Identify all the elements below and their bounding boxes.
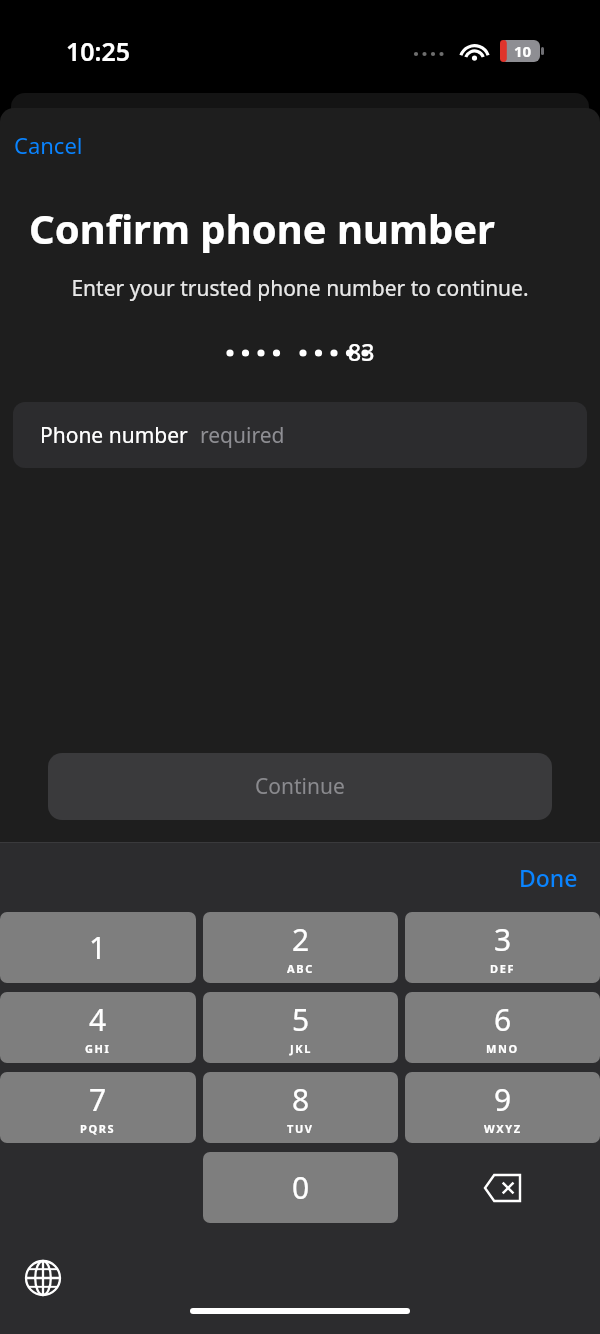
button[interactable]: 1 bbox=[0, 912, 196, 983]
staticText: 3 bbox=[494, 919, 512, 960]
button[interactable]: 0 bbox=[203, 1152, 398, 1223]
button[interactable]: 3 bbox=[405, 912, 600, 983]
staticText: Continue bbox=[255, 772, 345, 801]
staticText: 0 bbox=[292, 1167, 310, 1208]
staticText: Phone number bbox=[40, 421, 188, 450]
staticText: 8 bbox=[292, 1079, 310, 1120]
button[interactable]: 4 bbox=[0, 992, 196, 1063]
staticText: PQRS bbox=[80, 1121, 116, 1136]
staticText: ABC bbox=[287, 961, 314, 976]
staticText: DEF bbox=[490, 961, 516, 976]
staticText: 9 bbox=[494, 1079, 512, 1120]
button[interactable]: 8 bbox=[203, 1072, 398, 1143]
staticText: Done bbox=[519, 862, 578, 893]
button[interactable]: 6 bbox=[405, 992, 600, 1063]
staticText: MNO bbox=[486, 1041, 519, 1056]
staticText: 83 bbox=[348, 336, 375, 367]
staticText: Confirm phone number bbox=[29, 201, 495, 255]
staticText: required bbox=[200, 421, 285, 450]
staticText: 5 bbox=[292, 999, 310, 1040]
staticText: WXYZ bbox=[484, 1121, 522, 1136]
button[interactable]: Change keyboard bbox=[17, 1252, 69, 1304]
button[interactable]: 2 bbox=[203, 912, 398, 983]
button[interactable]: Delete bbox=[405, 1152, 600, 1223]
staticText: 4 bbox=[89, 999, 107, 1040]
button[interactable]: 5 bbox=[203, 992, 398, 1063]
staticText: Cancel bbox=[14, 130, 83, 160]
button[interactable]: Phone number bbox=[13, 402, 587, 468]
staticText: 10 bbox=[514, 41, 532, 61]
staticText: 2 bbox=[292, 919, 310, 960]
staticText: Enter your trusted phone number to conti… bbox=[22, 274, 578, 303]
button[interactable]: 7 bbox=[0, 1072, 196, 1143]
staticText: 10:25 bbox=[66, 34, 131, 68]
button[interactable]: Cancel bbox=[2, 124, 95, 166]
staticText: JKL bbox=[290, 1041, 312, 1056]
staticText: 6 bbox=[494, 999, 512, 1040]
staticText: 7 bbox=[89, 1079, 107, 1120]
staticText: TUV bbox=[287, 1121, 314, 1136]
staticText: GHI bbox=[85, 1041, 111, 1056]
staticText: 1 bbox=[89, 927, 107, 968]
button[interactable]: 9 bbox=[405, 1072, 600, 1143]
button[interactable]: Continue bbox=[48, 753, 552, 820]
button[interactable]: Done bbox=[507, 854, 590, 901]
